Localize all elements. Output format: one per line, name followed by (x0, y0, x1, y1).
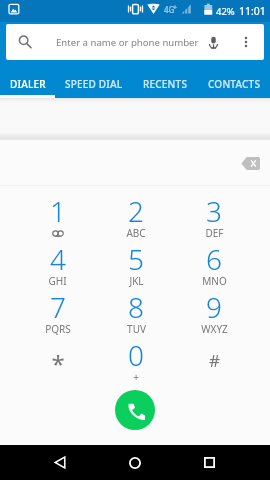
staticText: DEF (205, 226, 224, 240)
staticText: 6 (206, 240, 222, 278)
button[interactable]: 2 (97, 195, 175, 243)
button[interactable]: Call (115, 390, 155, 430)
button[interactable]: 7 (18, 291, 97, 339)
staticText: 3 (206, 192, 222, 230)
staticText: MNO (202, 274, 227, 288)
staticText: # (209, 349, 220, 372)
button[interactable]: Voice search (199, 24, 227, 60)
button[interactable]: 9 (175, 291, 253, 339)
button[interactable]: CONTACTS (198, 70, 270, 98)
button[interactable]: More options (227, 24, 264, 60)
staticText: SPEED DIAL (65, 77, 123, 91)
staticText: + (173, 3, 178, 13)
staticText: 11:01 (239, 4, 266, 18)
button[interactable]: 6 (175, 243, 253, 291)
staticText: + (133, 370, 139, 384)
button[interactable]: Enter a name or phone number (6, 24, 264, 60)
staticText: GHI (48, 274, 67, 288)
staticText: 42% (216, 5, 235, 18)
staticText: WXYZ (201, 322, 228, 336)
staticText: 5 (128, 240, 144, 278)
staticText: DIALER (10, 77, 46, 91)
button[interactable]: DIALER (0, 70, 55, 98)
button[interactable]: 3 (175, 195, 253, 243)
staticText: TUV (127, 322, 146, 336)
button[interactable]: 4 (18, 243, 97, 291)
button[interactable]: Home (97, 445, 172, 480)
button[interactable]: 5 (97, 243, 175, 291)
staticText: Enter a name or phone number (56, 36, 212, 49)
staticText: 7 (50, 288, 66, 326)
button[interactable]: SPEED DIAL (55, 70, 132, 98)
staticText: 9 (206, 288, 222, 326)
staticText: PQRS (45, 322, 71, 336)
staticText: 2 (128, 192, 144, 230)
staticText: RECENTS (143, 77, 188, 91)
button[interactable]: 0 (97, 339, 175, 387)
staticText: CONTACTS (208, 77, 261, 91)
staticText: JKL (129, 274, 144, 288)
staticText: 4 (50, 240, 66, 278)
button[interactable]: # (175, 339, 253, 387)
staticText: 4G (164, 4, 175, 15)
staticText: 8 (128, 288, 144, 326)
button[interactable]: Back (23, 445, 97, 480)
staticText: * (51, 347, 65, 380)
button[interactable]: Backspace (233, 146, 267, 180)
button[interactable]: 1 (18, 195, 97, 243)
button[interactable]: Recent apps (172, 445, 247, 480)
staticText: ABC (126, 226, 146, 240)
button[interactable]: 8 (97, 291, 175, 339)
staticText: 1 (50, 192, 66, 230)
staticText: 0 (128, 336, 144, 374)
button[interactable]: * (18, 339, 97, 387)
button[interactable]: RECENTS (132, 70, 198, 98)
